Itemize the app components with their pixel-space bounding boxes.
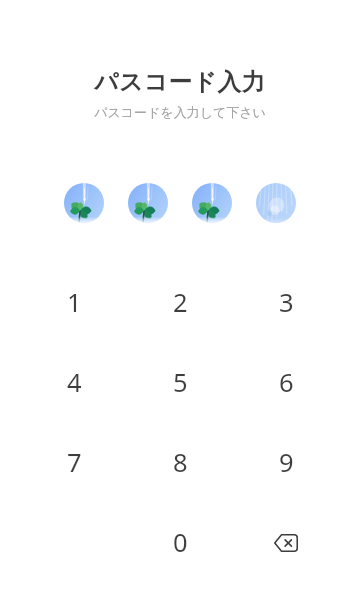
button[interactable]: 9 — [238, 422, 334, 502]
button[interactable]: Backspace — [238, 502, 334, 582]
button[interactable]: 8 — [132, 422, 228, 502]
staticText: 0 — [173, 525, 188, 560]
staticText: 3 — [279, 285, 294, 320]
button[interactable]: 2 — [132, 262, 228, 342]
staticText: 9 — [279, 445, 294, 480]
staticText: 7 — [67, 445, 82, 480]
staticText: 2 — [173, 285, 188, 320]
other: Passcode digit entered — [128, 183, 168, 223]
button[interactable]: 0 — [132, 502, 228, 582]
button[interactable]: 6 — [238, 342, 334, 422]
staticText: 6 — [279, 365, 294, 400]
staticText: パスコードを入力して下さい — [94, 104, 266, 120]
button[interactable]: 7 — [26, 422, 122, 502]
other: Passcode digit entered — [192, 183, 232, 223]
staticText: パスコード入力 — [94, 67, 266, 97]
button[interactable]: 3 — [238, 262, 334, 342]
staticText: 8 — [173, 445, 188, 480]
staticText: 1 — [67, 285, 82, 320]
button[interactable]: 5 — [132, 342, 228, 422]
other: Passcode digit empty — [256, 183, 296, 223]
staticText: 4 — [67, 365, 82, 400]
other: Passcode digit entered — [64, 183, 104, 223]
staticText: 5 — [173, 365, 188, 400]
button[interactable]: 4 — [26, 342, 122, 422]
button[interactable]: 1 — [26, 262, 122, 342]
